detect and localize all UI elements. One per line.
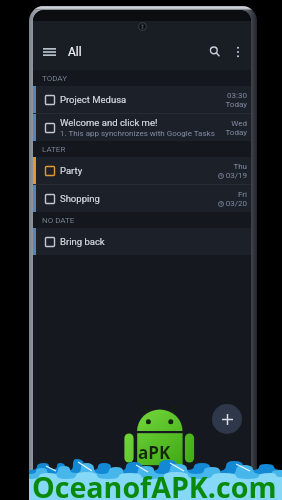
staticText: LATER xyxy=(42,145,66,154)
staticText: OceanofAPK.com xyxy=(32,467,277,500)
staticText: Shopping xyxy=(60,193,100,204)
button[interactable]: Party xyxy=(33,157,251,184)
staticText: Party xyxy=(60,165,83,176)
staticText: 03:30 xyxy=(227,91,247,100)
staticText: 03/19 xyxy=(225,171,247,180)
staticText: Welcome and click me! xyxy=(60,117,158,128)
staticText: All xyxy=(68,45,82,59)
staticText: Thu xyxy=(233,162,247,171)
button[interactable]: More options xyxy=(226,40,250,64)
staticText: Bring back xyxy=(60,236,105,247)
button[interactable]: Welcome and click me! xyxy=(33,114,251,141)
button[interactable]: Add task xyxy=(212,404,242,434)
button[interactable]: Navigation menu xyxy=(33,40,65,64)
button[interactable]: Project Medusa xyxy=(33,86,251,113)
staticText: Today xyxy=(225,128,247,137)
staticText: 03/20 xyxy=(225,199,247,208)
staticText: Wed xyxy=(231,119,247,128)
staticText: Today xyxy=(225,100,247,109)
staticText: aPK xyxy=(138,441,171,464)
button[interactable]: Bring back xyxy=(33,228,251,255)
staticText: 1. This app synchronizes with Google Tas… xyxy=(60,129,215,138)
staticText: Fri xyxy=(238,190,247,199)
staticText: TODAY xyxy=(42,74,67,83)
button[interactable]: Search xyxy=(203,40,227,64)
button[interactable]: Shopping xyxy=(33,185,251,212)
staticText: NO DATE xyxy=(42,216,75,225)
button[interactable]: All xyxy=(68,40,82,64)
staticText: Project Medusa xyxy=(60,94,127,105)
